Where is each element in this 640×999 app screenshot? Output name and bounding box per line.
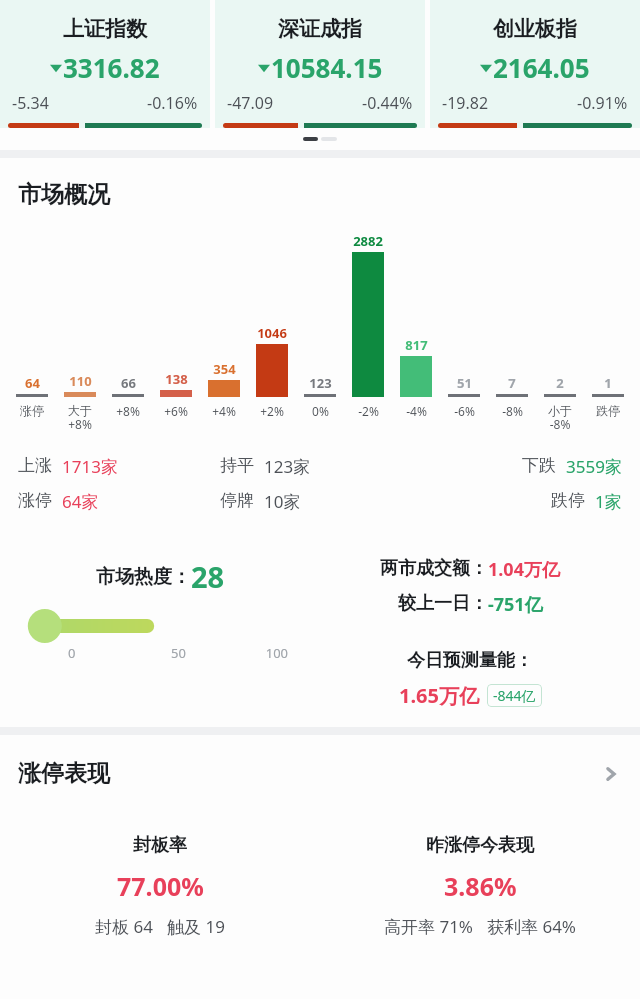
staticText: +4% <box>212 403 236 419</box>
staticText: 1046 <box>257 324 287 342</box>
staticText: -19.82 <box>442 92 489 114</box>
staticText: 涨停表现 <box>18 759 600 788</box>
staticText: 大于 +8% <box>68 403 92 433</box>
staticText: 2882 <box>353 232 383 250</box>
staticText: 123家 <box>264 455 311 478</box>
staticText: -6% <box>454 403 475 419</box>
staticText: 3559家 <box>566 455 622 478</box>
staticText: 3316.82 <box>63 50 160 85</box>
staticText: 10584.15 <box>271 50 383 85</box>
staticText: -47.09 <box>227 92 274 114</box>
staticText: 66 <box>121 374 136 392</box>
staticText: 7 <box>508 374 516 392</box>
staticText: 上证指数 <box>63 16 147 42</box>
staticText: -4% <box>406 403 427 419</box>
staticText: 跌停 <box>551 490 585 511</box>
staticText: 小于 -8% <box>548 403 572 433</box>
staticText: 1家 <box>595 490 622 513</box>
staticText: 10家 <box>264 490 301 513</box>
button[interactable]: 深证成指 <box>215 0 425 128</box>
staticText: 获利率 64% <box>487 915 576 938</box>
staticText: 354 <box>213 360 236 378</box>
staticText: 1.04万亿 <box>488 557 560 582</box>
staticText: 高开率 71% <box>384 915 473 938</box>
staticText: 下跌 <box>522 455 556 476</box>
staticText: +6% <box>164 403 188 419</box>
staticText: 817 <box>405 336 428 354</box>
staticText: 1.65万亿 <box>399 682 479 709</box>
staticText: 涨停 <box>18 490 52 511</box>
other: 查看更多 <box>600 763 622 785</box>
staticText: 市场热度： <box>96 565 191 589</box>
staticText: -0.16% <box>147 92 198 114</box>
staticText: 创业板指 <box>493 16 577 42</box>
button[interactable]: 封板率 <box>0 834 320 938</box>
staticText: 138 <box>165 370 188 388</box>
staticText: -844亿 <box>493 686 536 705</box>
staticText: 两市成交额： <box>380 557 488 580</box>
staticText: 上涨 <box>18 455 52 476</box>
staticText: 停牌 <box>220 490 254 511</box>
staticText: 51 <box>457 374 472 392</box>
staticText: 1713家 <box>62 455 118 478</box>
staticText: 77.00% <box>117 869 204 903</box>
staticText: 0% <box>312 403 329 419</box>
button[interactable]: 创业板指 <box>430 0 640 128</box>
staticText: 50 <box>142 644 215 662</box>
staticText: 2 <box>556 374 564 392</box>
staticText: -8% <box>502 403 523 419</box>
staticText: 123 <box>309 374 332 392</box>
staticText: 封板率 <box>133 834 187 857</box>
staticText: 跌停 <box>596 403 620 418</box>
staticText: 封板 64 <box>95 915 153 938</box>
staticText: 0 <box>68 644 142 662</box>
staticText: 100 <box>215 644 288 662</box>
staticText: +2% <box>260 403 284 419</box>
staticText: 3.86% <box>444 869 517 903</box>
staticText: 1 <box>604 374 612 392</box>
staticText: -5.34 <box>12 92 49 114</box>
staticText: 较上一日： <box>398 592 488 615</box>
staticText: 64家 <box>62 490 99 513</box>
button[interactable]: 涨停表现 <box>0 735 640 798</box>
staticText: -0.44% <box>362 92 413 114</box>
staticText: -751亿 <box>488 592 543 617</box>
staticText: 触及 19 <box>167 915 225 938</box>
staticText: 2164.05 <box>493 50 590 85</box>
staticText: +8% <box>116 403 140 419</box>
staticText: 市场概况 <box>18 180 110 209</box>
button[interactable]: 上证指数 <box>0 0 210 128</box>
staticText: 110 <box>69 372 92 390</box>
staticText: 昨涨停今表现 <box>426 834 534 857</box>
staticText: -0.91% <box>577 92 628 114</box>
staticText: 64 <box>25 374 40 392</box>
staticText: 深证成指 <box>278 16 362 42</box>
staticText: -2% <box>358 403 379 419</box>
staticText: 今日预测量能： <box>407 649 533 672</box>
staticText: 28 <box>191 557 225 596</box>
staticText: 涨停 <box>20 403 44 418</box>
button[interactable]: 昨涨停今表现 <box>320 834 640 938</box>
staticText: 持平 <box>220 455 254 476</box>
